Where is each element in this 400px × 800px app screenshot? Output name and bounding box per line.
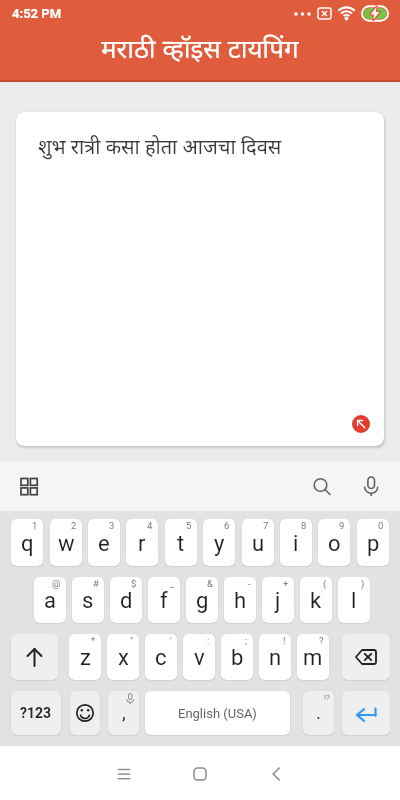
staticText: u [252,531,265,557]
staticText: a [44,588,56,614]
staticText: j [275,588,281,614]
button[interactable]: c [145,634,177,680]
staticText: v [194,645,205,671]
staticText: 9 [339,520,345,531]
staticText: 5 [186,520,192,531]
staticText: w [58,531,75,557]
staticText: ; [245,635,248,646]
staticText: ) [361,578,365,589]
staticText: y [214,531,225,557]
button[interactable] [359,474,383,498]
button[interactable]: t [165,519,197,566]
button[interactable]: e [88,519,120,566]
staticText: !? [324,693,330,702]
staticText: 6 [224,520,230,531]
staticText: _ [170,578,175,589]
button[interactable]: शुभ रात्री कसा होता आजचा दिवस [16,112,384,446]
button[interactable]: p [357,519,389,566]
button[interactable] [342,634,390,680]
staticText: r [138,531,146,557]
button[interactable]: j [262,577,294,623]
button[interactable] [70,691,100,735]
staticText: 0 [378,520,384,531]
button[interactable]: z [69,634,101,680]
staticText: p [367,531,380,557]
staticText: शुभ रात्री कसा होता आजचा दिवस [38,133,282,160]
button[interactable]: u [242,519,274,566]
staticText: e [98,531,110,557]
staticText: ( [323,578,327,589]
button[interactable]: o [318,519,350,566]
staticText: l [351,588,357,614]
staticText: ! [283,635,286,646]
button[interactable]: i [280,519,312,566]
button[interactable]: y [203,519,235,566]
staticText: c [155,645,167,671]
button[interactable]: q [11,519,43,566]
button[interactable]: n [259,634,291,680]
button[interactable]: g [186,577,218,623]
button[interactable] [265,762,289,786]
staticText: , [122,701,126,723]
button[interactable]: d [110,577,142,623]
staticText: - [248,578,251,589]
staticText: 8 [301,520,307,531]
button[interactable]: f [148,577,180,623]
staticText: ?123 [20,705,52,721]
button[interactable] [352,415,370,433]
staticText: q [21,531,34,557]
staticText: 7 [263,520,269,531]
staticText: # [93,578,99,589]
staticText: 4 [147,520,153,531]
button[interactable]: English (USA) [145,691,290,735]
button[interactable]: ?123 [11,691,61,735]
staticText: d [120,588,133,614]
staticText: + [283,578,289,589]
button[interactable]: l [338,577,370,623]
staticText: 1 [32,520,38,531]
button[interactable]: v [183,634,215,680]
staticText: ? [319,635,324,646]
button[interactable]: s [72,577,104,623]
button[interactable]: w [50,519,82,566]
staticText: 4:52 PM [12,6,62,21]
staticText: o [328,531,341,557]
staticText: @ [52,578,61,589]
staticText: m [303,645,323,671]
staticText: . [316,701,322,723]
button[interactable] [310,474,334,498]
button[interactable]: b [221,634,253,680]
staticText: * [91,635,96,646]
staticText: 2 [71,520,77,531]
staticText: n [269,645,282,671]
button[interactable]: , [108,691,139,735]
button[interactable]: k [300,577,332,623]
staticText: h [234,588,247,614]
staticText: f [160,588,168,614]
button[interactable]: x [107,634,139,680]
staticText: $ [131,578,137,589]
button[interactable] [17,475,41,499]
staticText: s [82,588,94,614]
button[interactable] [342,691,390,735]
button[interactable]: . [303,691,334,735]
staticText: & [207,578,213,589]
button[interactable]: m [297,634,329,680]
staticText: x [118,645,129,671]
staticText: ' [170,635,172,646]
staticText: z [80,645,91,671]
button[interactable]: r [126,519,158,566]
staticText: b [231,645,244,671]
staticText: 3 [109,520,115,531]
button[interactable] [11,634,58,680]
staticText: " [130,635,134,646]
button[interactable] [188,762,212,786]
staticText: i [293,531,299,557]
button[interactable] [112,762,136,786]
button[interactable]: h [224,577,256,623]
button[interactable]: a [34,577,66,623]
staticText: English (USA) [178,706,257,721]
staticText: g [196,588,209,614]
staticText: मराठी व्हॉइस टायपिंग [101,30,299,65]
staticText: t [177,531,185,557]
